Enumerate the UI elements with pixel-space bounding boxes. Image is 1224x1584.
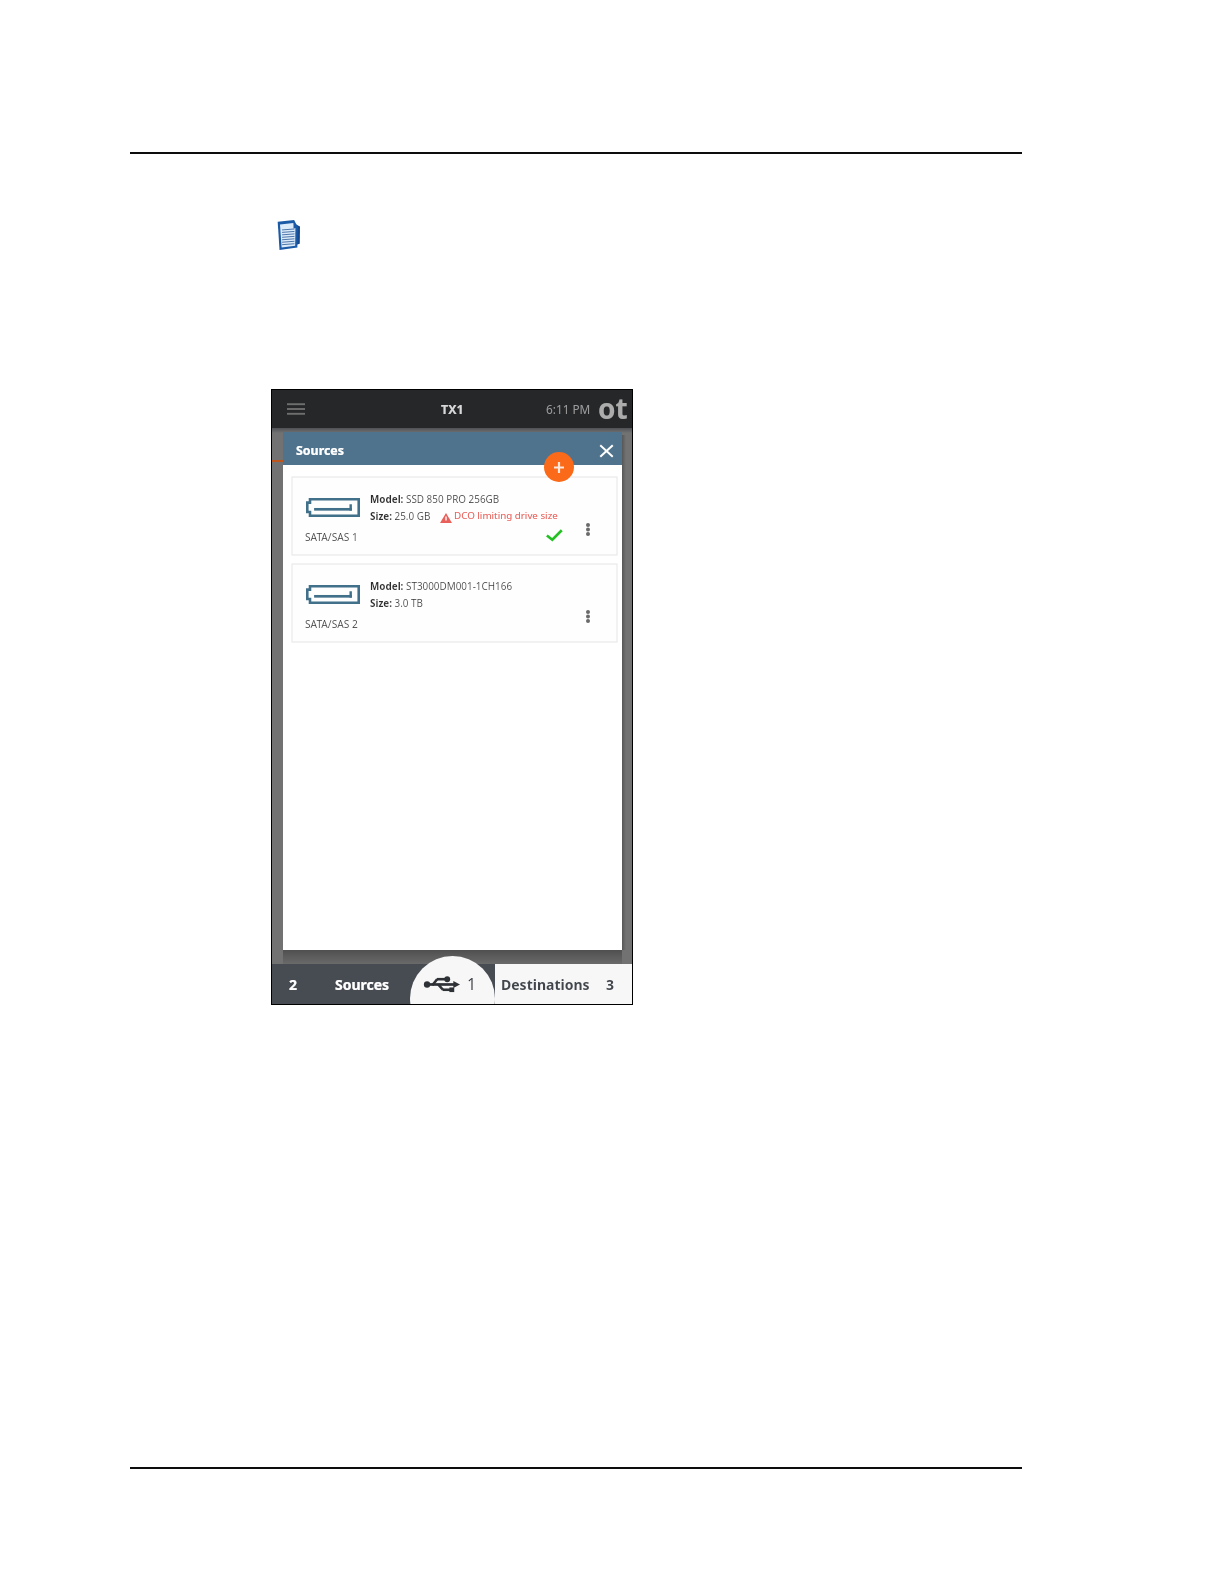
staticText: DCO limiting drive size [454, 509, 558, 522]
staticText: 6:11 PM [546, 401, 591, 417]
staticText: Model: ST3000DM001-1CH166 [370, 579, 513, 592]
staticText: 2 [289, 975, 298, 994]
staticText: 3 [606, 975, 615, 994]
button[interactable]: Add source [544, 452, 574, 482]
staticText: ot [598, 389, 628, 427]
button[interactable]: USB devices [410, 956, 495, 1004]
staticText: Destinations [501, 975, 590, 994]
staticText: Sources [335, 975, 390, 994]
staticText: SATA/SAS 1 [305, 530, 358, 544]
staticText: Size: 25.0 GB [370, 509, 431, 522]
button[interactable]: More options [577, 518, 599, 540]
button[interactable]: SATA/SAS 2 [292, 564, 617, 642]
button[interactable]: Menu [282, 395, 310, 423]
button[interactable]: Destinations [495, 964, 632, 1004]
staticText: SATA/SAS 2 [305, 617, 358, 631]
staticText: Size: 3.0 TB [370, 596, 424, 609]
button[interactable]: More options [577, 605, 599, 627]
staticText: Model: SSD 850 PRO 256GB [370, 492, 500, 505]
button[interactable]: Close [594, 438, 616, 460]
staticText: 1 [467, 973, 477, 995]
staticText: Sources [296, 442, 344, 459]
button[interactable]: SATA/SAS 1 [292, 477, 617, 555]
staticText: TX1 [441, 401, 464, 418]
button[interactable]: 2 [272, 964, 495, 1004]
